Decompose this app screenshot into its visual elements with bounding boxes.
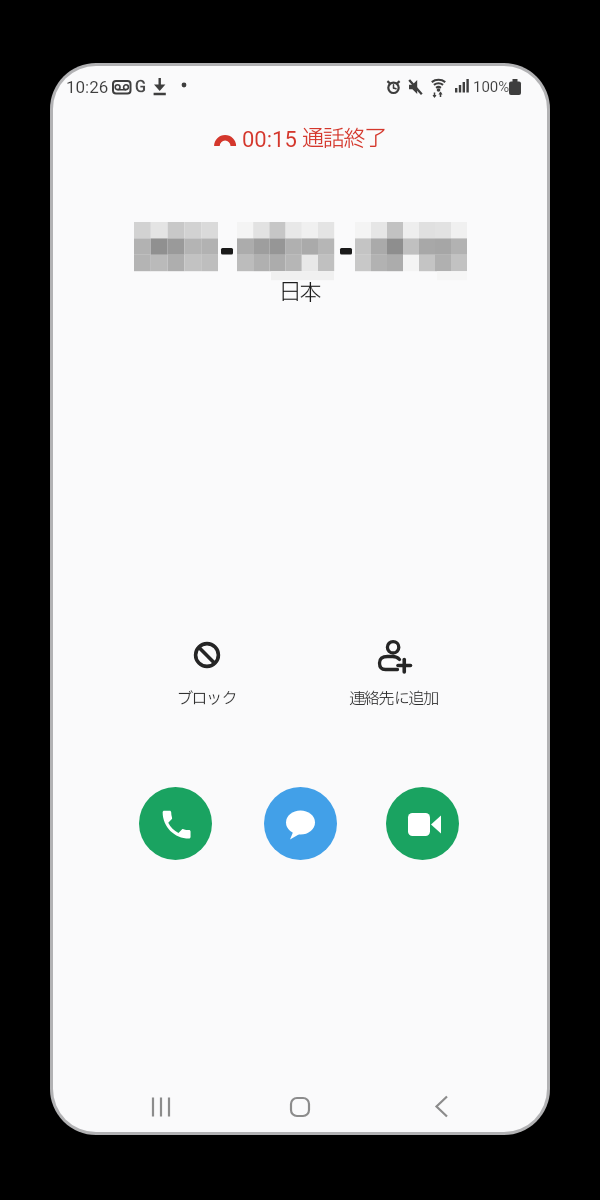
staticText: 連絡先に追加 [349, 687, 438, 711]
button[interactable] [139, 787, 212, 860]
button[interactable] [126, 1081, 196, 1132]
button[interactable] [386, 787, 459, 860]
button[interactable]: 連絡先に追加 [338, 637, 448, 721]
staticText: 通話終了 [302, 123, 386, 156]
button[interactable] [264, 787, 337, 860]
staticText: ブロック [177, 687, 237, 711]
staticText: 100% [473, 78, 510, 96]
button[interactable] [265, 1081, 335, 1132]
staticText: 日本 [279, 277, 321, 310]
button[interactable] [406, 1081, 476, 1132]
staticText: G [135, 77, 146, 96]
staticText: 10:26 [66, 77, 109, 97]
button[interactable]: ブロック [152, 637, 262, 721]
staticText: 00:15 [242, 127, 297, 153]
